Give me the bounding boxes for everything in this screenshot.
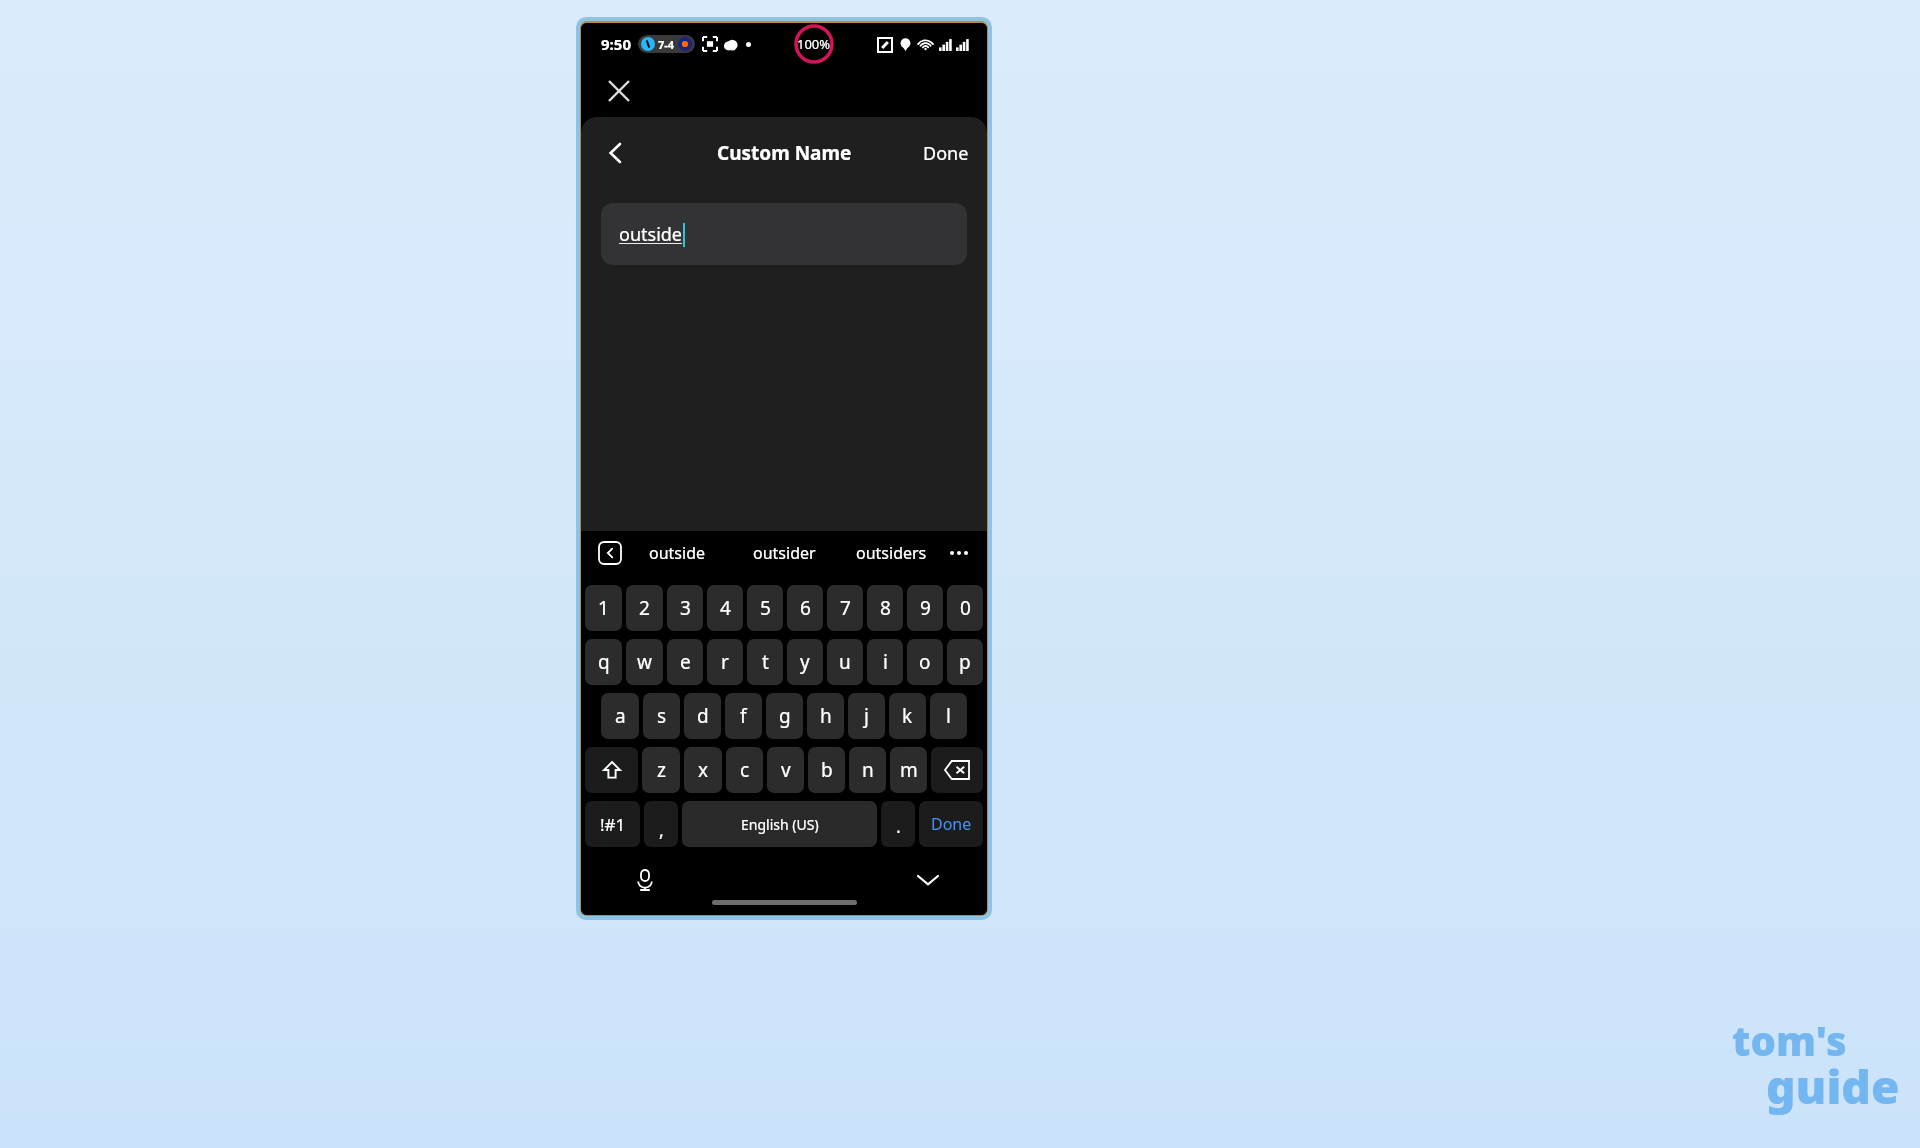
button[interactable]: Backspace <box>931 747 983 793</box>
button[interactable]: a <box>601 693 639 739</box>
staticText: x <box>698 757 709 783</box>
staticText: e <box>680 649 691 675</box>
button[interactable]: Previous suggestions <box>597 540 623 566</box>
staticText: c <box>740 757 750 783</box>
button[interactable]: y <box>787 639 823 685</box>
staticText: English (US) <box>741 815 819 834</box>
staticText: , <box>659 818 664 843</box>
button[interactable]: q <box>585 639 622 685</box>
staticText: z <box>657 757 666 783</box>
staticText: w <box>637 649 652 675</box>
button[interactable]: Done <box>915 133 977 174</box>
staticText: 100% <box>797 35 831 53</box>
button[interactable]: j <box>848 693 885 739</box>
button[interactable]: outside <box>623 531 731 575</box>
staticText: n <box>862 757 874 783</box>
staticText: t <box>762 649 769 675</box>
staticText: d <box>697 703 709 729</box>
button[interactable]: 4 <box>707 585 743 631</box>
button[interactable]: outsider <box>731 531 838 575</box>
button[interactable]: More suggestions <box>945 539 973 567</box>
staticText: Done <box>923 141 969 166</box>
button[interactable]: 6 <box>787 585 823 631</box>
button[interactable]: , <box>644 801 678 847</box>
staticText: Done <box>931 813 972 835</box>
staticText: guide <box>1766 1055 1900 1118</box>
staticText: i <box>883 649 888 675</box>
staticText: Custom Name <box>717 140 852 166</box>
staticText: 4 <box>720 595 731 621</box>
button[interactable]: Done <box>919 801 983 847</box>
staticText: 5 <box>760 595 771 621</box>
button[interactable]: outsiders <box>838 531 945 575</box>
staticText: outsiders <box>856 542 927 564</box>
button[interactable]: t <box>747 639 783 685</box>
button[interactable]: g <box>766 693 803 739</box>
button[interactable]: !#1 <box>585 801 640 847</box>
staticText: o <box>919 649 931 675</box>
staticText: . <box>896 814 901 839</box>
button[interactable]: l <box>930 693 967 739</box>
button[interactable]: d <box>684 693 721 739</box>
staticText: outsider <box>753 542 816 564</box>
button[interactable]: h <box>807 693 844 739</box>
button[interactable]: English (US) <box>682 801 877 847</box>
staticText: 2 <box>639 595 650 621</box>
button[interactable]: b <box>808 747 845 793</box>
staticText: h <box>820 703 832 729</box>
button[interactable]: o <box>907 639 943 685</box>
button[interactable]: 0 <box>947 585 983 631</box>
staticText: 1 <box>598 595 609 621</box>
staticText: 3 <box>680 595 691 621</box>
staticText: q <box>598 649 610 675</box>
staticText: 0 <box>960 595 971 621</box>
button[interactable]: 5 <box>747 585 783 631</box>
staticText: k <box>902 703 913 729</box>
staticText: 7-4 <box>658 37 675 52</box>
button[interactable]: Voice input <box>629 864 661 896</box>
button[interactable]: i <box>867 639 903 685</box>
button[interactable]: 8 <box>867 585 903 631</box>
staticText: m <box>900 757 918 783</box>
staticText: p <box>959 649 971 675</box>
staticText: u <box>839 649 851 675</box>
staticText: tom's <box>1732 1013 1847 1067</box>
button[interactable]: u <box>827 639 863 685</box>
button[interactable]: p <box>947 639 983 685</box>
staticText: r <box>721 649 729 675</box>
staticText: f <box>740 703 747 729</box>
staticText: outside <box>649 542 706 564</box>
button[interactable]: k <box>889 693 926 739</box>
button[interactable]: w <box>626 639 663 685</box>
button[interactable]: Back <box>595 132 637 174</box>
button[interactable]: 3 <box>667 585 703 631</box>
button[interactable]: Shift <box>585 747 638 793</box>
staticText: outside <box>619 222 682 247</box>
button[interactable]: n <box>849 747 886 793</box>
button[interactable]: m <box>890 747 927 793</box>
staticText: 9:50 <box>601 34 631 54</box>
button[interactable]: f <box>725 693 762 739</box>
staticText: 7 <box>840 595 851 621</box>
button[interactable]: 1 <box>585 585 622 631</box>
button[interactable]: s <box>643 693 680 739</box>
staticText: g <box>779 703 791 729</box>
staticText: 8 <box>880 595 891 621</box>
button[interactable]: z <box>642 747 680 793</box>
button[interactable]: v <box>767 747 804 793</box>
button[interactable]: 9 <box>907 585 943 631</box>
button[interactable]: r <box>707 639 743 685</box>
staticText: v <box>781 757 791 783</box>
staticText: !#1 <box>600 813 626 836</box>
staticText: 9 <box>920 595 931 621</box>
button[interactable]: x <box>684 747 722 793</box>
button[interactable]: 7 <box>827 585 863 631</box>
button[interactable]: . <box>881 801 915 847</box>
button[interactable]: outside <box>601 203 967 265</box>
button[interactable]: e <box>667 639 703 685</box>
button[interactable]: Hide keyboard <box>911 863 945 897</box>
button[interactable]: 2 <box>626 585 663 631</box>
button[interactable]: Close <box>599 71 639 111</box>
staticText: j <box>864 703 869 729</box>
button[interactable]: c <box>726 747 763 793</box>
